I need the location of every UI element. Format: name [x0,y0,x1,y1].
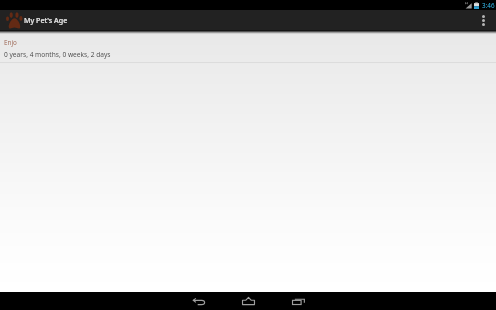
staticText: Enjo [4,38,17,47]
button[interactable]: Recent apps [273,292,323,310]
button[interactable]: Home [224,292,273,310]
staticText: My Pet's Age [24,15,68,25]
button[interactable]: More options [471,10,496,30]
staticText: 3:46 [482,1,495,10]
button[interactable]: Back [174,292,224,310]
staticText: 0 years, 4 months, 0 weeks, 2 days [4,50,111,59]
button[interactable]: Enjo [0,30,496,63]
